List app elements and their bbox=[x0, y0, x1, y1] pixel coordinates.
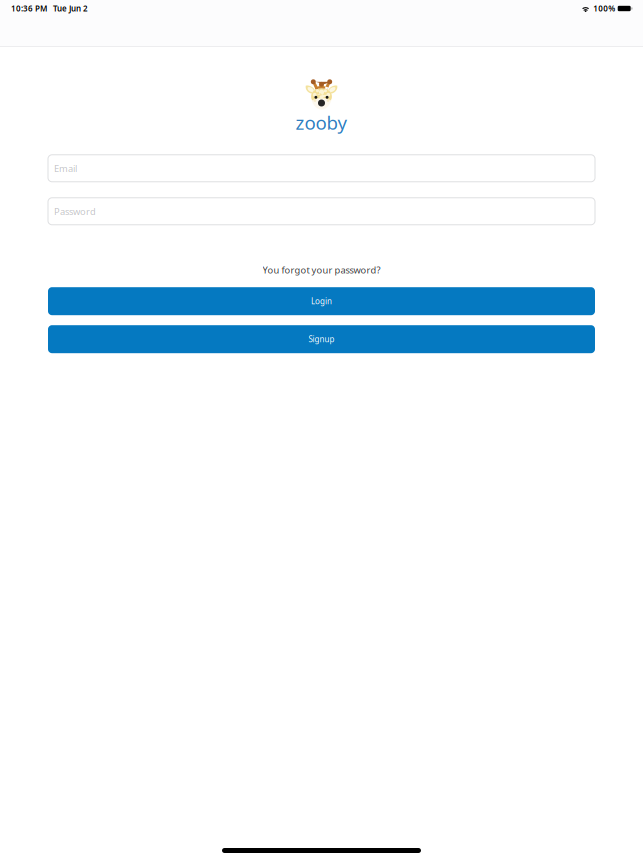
button[interactable]: Password bbox=[48, 198, 595, 225]
staticText: You forgot your password? bbox=[262, 264, 380, 276]
button[interactable]: Signup bbox=[48, 325, 595, 353]
staticText: 100% bbox=[593, 3, 615, 14]
staticText: Email bbox=[54, 162, 77, 174]
staticText: Signup bbox=[308, 334, 334, 344]
button[interactable]: Email bbox=[48, 155, 595, 182]
staticText: zooby bbox=[295, 110, 347, 135]
button[interactable]: You forgot your password? bbox=[262, 264, 380, 276]
staticText: Password bbox=[54, 205, 96, 217]
button[interactable]: Login bbox=[48, 287, 595, 315]
staticText: Tue Jun 2 bbox=[53, 3, 88, 14]
staticText: 10:36 PM bbox=[11, 3, 47, 14]
staticText: Login bbox=[311, 296, 332, 306]
